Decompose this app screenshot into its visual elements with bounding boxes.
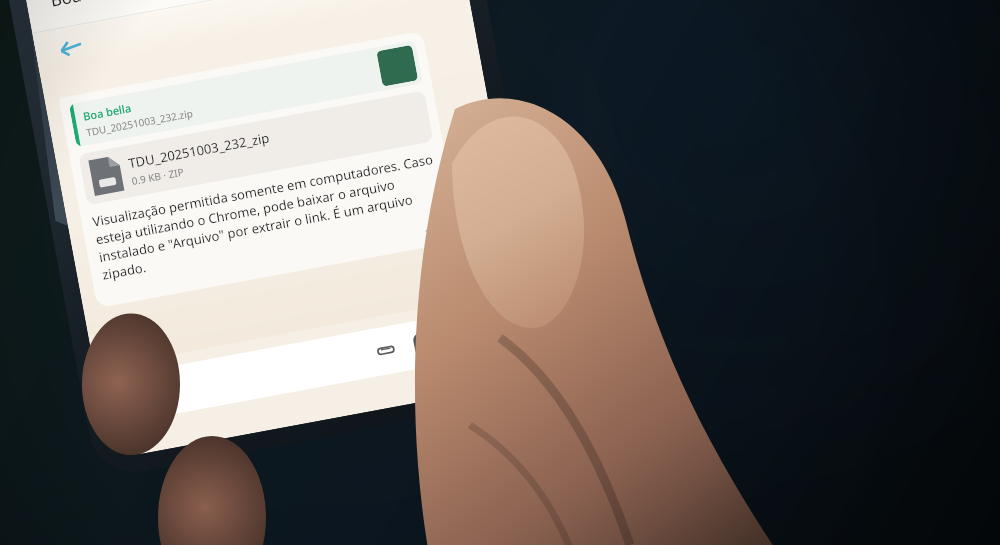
button[interactable]: TDU_20251003_232_zip — [78, 90, 434, 205]
button[interactable]: Camera — [408, 326, 443, 361]
staticText: 23:12 — [424, 223, 451, 240]
staticText: 0.9 KB · ZIP — [130, 164, 185, 188]
staticText: Boa bella — [82, 100, 133, 124]
button[interactable]: Attach — [108, 314, 460, 425]
staticText: TDU_20251003_232_zip — [127, 128, 271, 172]
button[interactable]: Boa bella — [58, 31, 461, 308]
staticText: Boa noite — [48, 0, 128, 12]
staticText: TDU_20251003_232.zip — [85, 106, 195, 139]
staticText: Visualização permitida somente em comput… — [91, 150, 446, 284]
button[interactable]: Back — [51, 28, 90, 68]
button[interactable]: Boa noite — [46, 0, 131, 16]
button[interactable]: Attach — [368, 333, 403, 368]
button[interactable]: Record voice message — [460, 300, 523, 362]
